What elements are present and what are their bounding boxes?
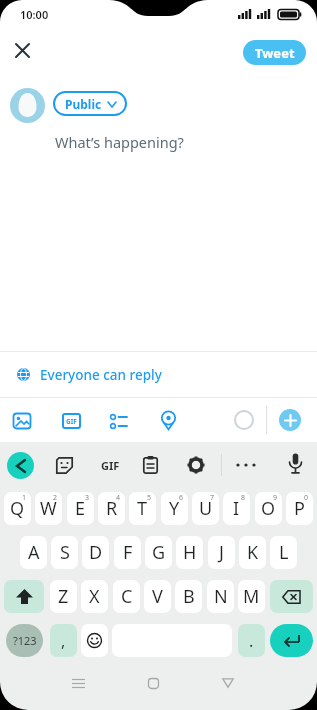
button[interactable] (110, 413, 128, 431)
staticText: Y (169, 496, 180, 521)
button[interactable] (7, 452, 34, 479)
button[interactable] (187, 456, 205, 474)
button[interactable]: E (67, 492, 94, 525)
staticText: T (137, 496, 148, 521)
button[interactable]: S (51, 536, 78, 569)
staticText: 9 (273, 493, 278, 503)
button[interactable]: X (81, 580, 108, 613)
button[interactable] (141, 672, 165, 694)
button[interactable]: H (176, 536, 203, 569)
button[interactable]: V (144, 580, 171, 613)
button[interactable] (270, 624, 313, 657)
button[interactable]: O (255, 492, 282, 525)
staticText: 0 (304, 493, 309, 503)
staticText: X (89, 584, 100, 609)
button[interactable]: GIF (62, 413, 81, 429)
button[interactable]: L (270, 536, 297, 569)
staticText: Tweet (255, 44, 295, 62)
staticText: S (60, 540, 70, 565)
button[interactable] (13, 412, 31, 430)
staticText: 6 (179, 493, 184, 503)
staticText: 7 (210, 493, 215, 503)
staticText: Everyone can reply (40, 366, 162, 384)
button[interactable]: M (238, 580, 265, 613)
staticText: 1 (22, 493, 27, 503)
staticText: B (183, 584, 195, 609)
button[interactable]: K (239, 536, 266, 569)
staticText: L (279, 540, 289, 565)
staticText: U (199, 496, 213, 521)
staticText: 5 (147, 493, 152, 503)
staticText: 8 (241, 493, 246, 503)
staticText: W (40, 496, 57, 521)
staticText: H (183, 540, 197, 565)
button[interactable] (8, 36, 36, 64)
staticText: What’s happening? (55, 132, 184, 152)
button[interactable] (143, 456, 158, 474)
button[interactable]: J (208, 536, 235, 569)
button[interactable] (4, 580, 44, 613)
staticText: D (89, 540, 103, 565)
button[interactable] (66, 672, 90, 694)
staticText: Z (58, 584, 69, 609)
button[interactable]: Y (161, 492, 188, 525)
staticText: J (219, 540, 224, 565)
button[interactable]: I (223, 492, 250, 525)
button[interactable]: Z (50, 580, 77, 613)
button[interactable]: , (50, 624, 77, 657)
staticText: 4 (116, 493, 121, 503)
button[interactable]: Public (53, 91, 127, 116)
staticText: I (233, 496, 240, 521)
staticText: Q (10, 496, 25, 521)
staticText: 10:00 (20, 7, 49, 22)
staticText: 3 (85, 493, 90, 503)
staticText: P (294, 496, 305, 521)
button[interactable]: P (286, 492, 313, 525)
staticText: 2 (53, 493, 58, 503)
staticText: GIF (66, 417, 77, 426)
staticText: F (123, 540, 133, 565)
button[interactable]: Tweet (243, 40, 306, 65)
staticText: C (121, 584, 133, 609)
button[interactable] (10, 88, 45, 123)
staticText: Public (65, 96, 102, 112)
staticText: K (247, 540, 259, 565)
staticText: ?123 (13, 633, 37, 648)
button[interactable] (81, 624, 108, 657)
staticText: V (152, 584, 163, 609)
button[interactable]: C (113, 580, 140, 613)
button[interactable]: A (20, 536, 47, 569)
staticText: G (152, 540, 166, 565)
button[interactable]: G (145, 536, 172, 569)
staticText: E (75, 496, 86, 521)
button[interactable]: B (175, 580, 202, 613)
button[interactable]: R (98, 492, 125, 525)
button[interactable]: ?123 (6, 624, 43, 657)
staticText: M (243, 584, 260, 609)
button[interactable] (235, 462, 257, 468)
staticText: , (61, 630, 66, 652)
button[interactable] (279, 409, 301, 431)
staticText: A (28, 540, 40, 565)
staticText: N (214, 584, 228, 609)
button[interactable]: Everyone can reply (0, 352, 317, 397)
button[interactable] (159, 410, 178, 431)
button[interactable]: N (207, 580, 234, 613)
button[interactable]: W (35, 492, 62, 525)
staticText: R (106, 496, 118, 521)
button[interactable]: D (82, 536, 109, 569)
staticText: . (249, 630, 254, 652)
staticText: GIF (101, 458, 120, 473)
button[interactable]: . (238, 624, 265, 657)
button[interactable]: Q (4, 492, 31, 525)
button[interactable] (270, 580, 313, 613)
button[interactable]: U (192, 492, 219, 525)
button[interactable] (288, 453, 303, 475)
staticText: O (261, 496, 276, 521)
button[interactable]: T (129, 492, 156, 525)
button[interactable]: GIF (96, 458, 124, 473)
button[interactable] (216, 672, 240, 694)
button[interactable]: F (114, 536, 141, 569)
button[interactable] (56, 457, 73, 474)
